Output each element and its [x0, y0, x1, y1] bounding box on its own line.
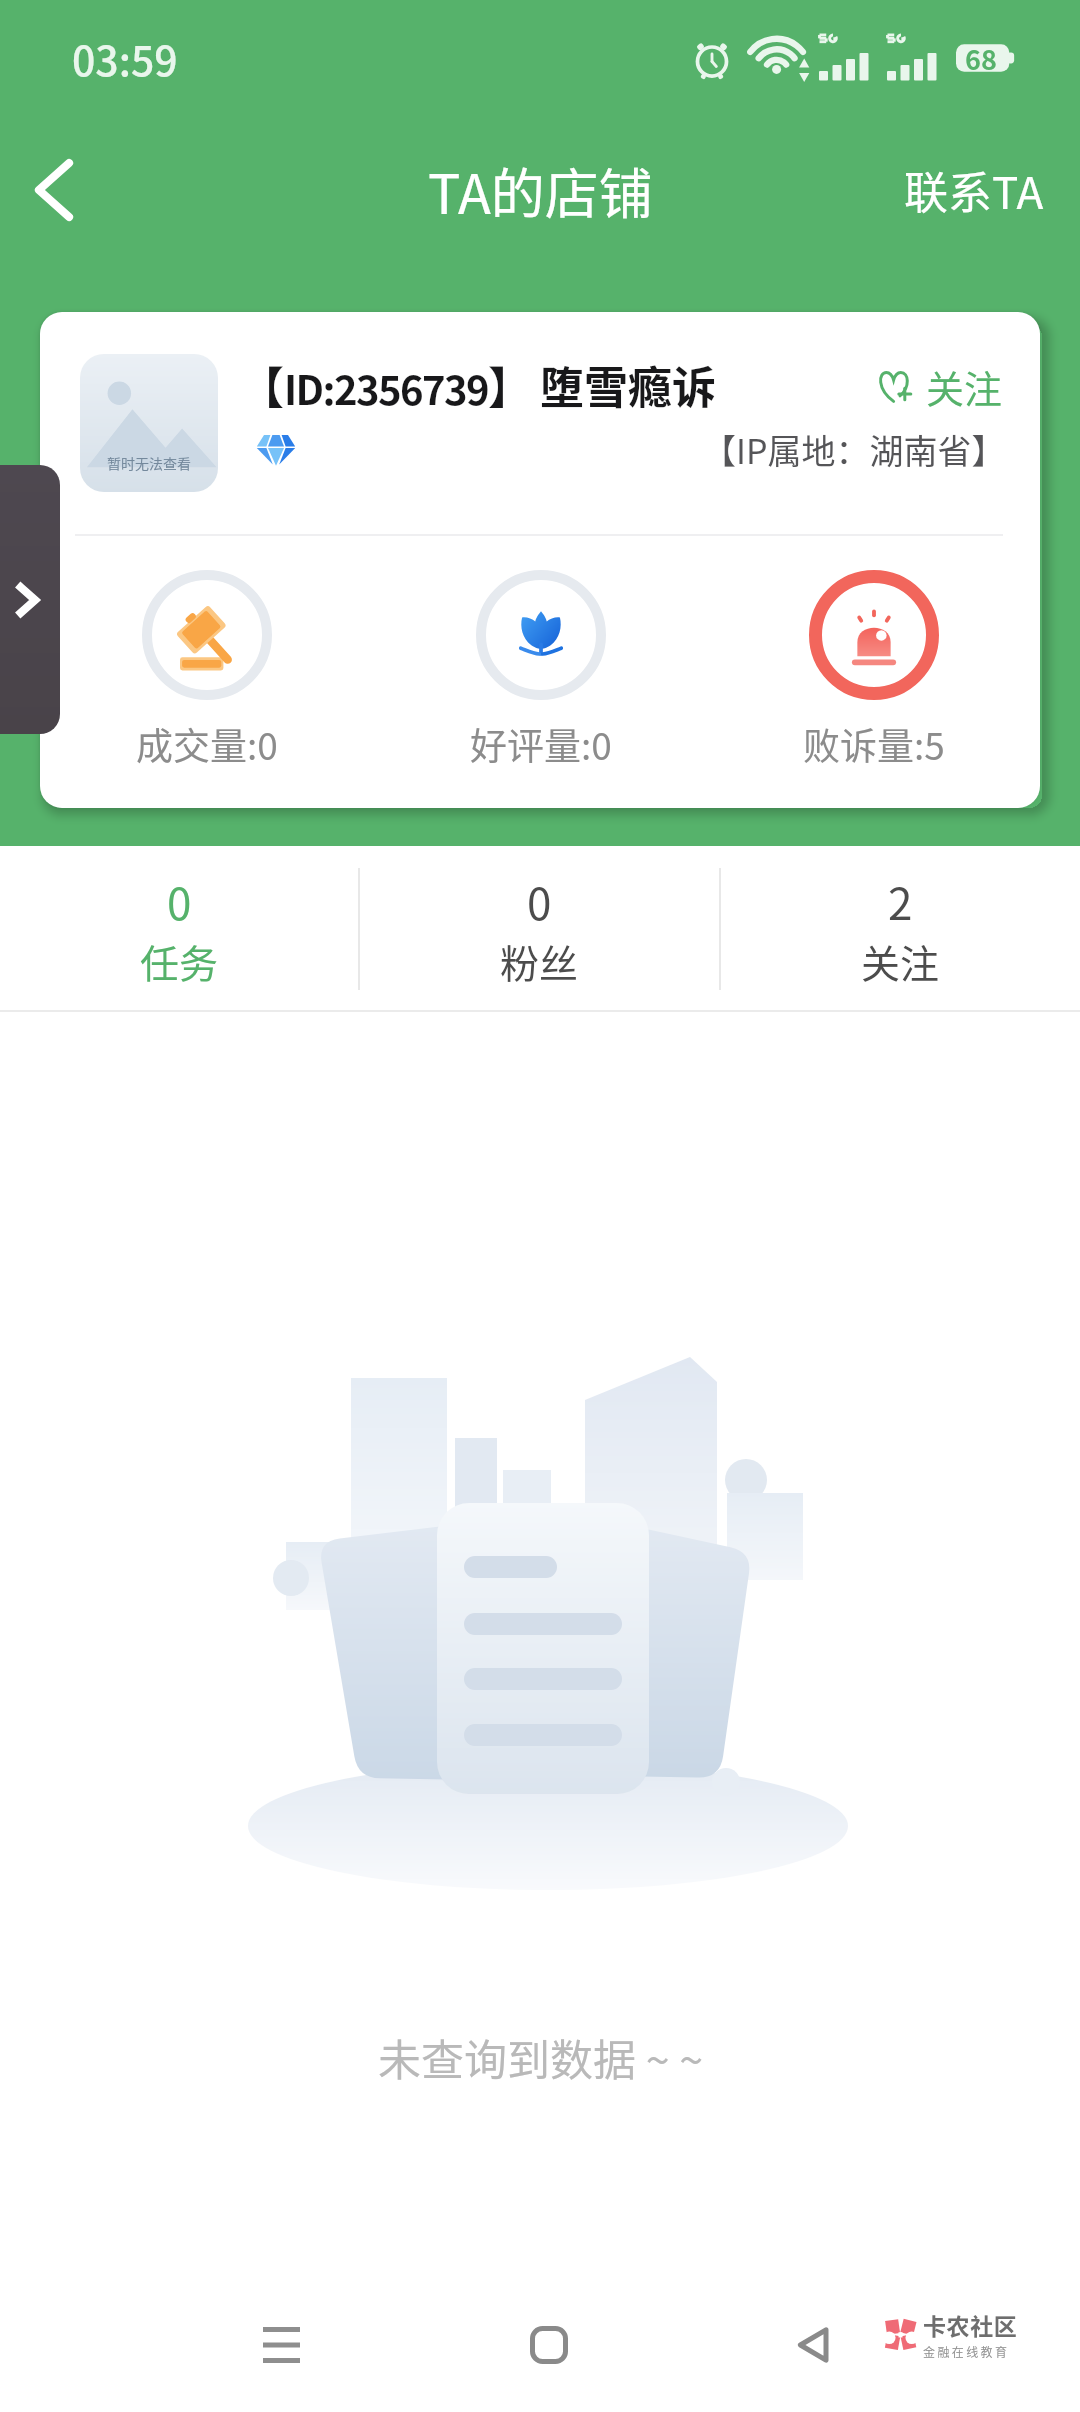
staticText: TA的店铺 [428, 151, 653, 229]
staticText: 未查询到数据 ~ ~ [378, 2026, 703, 2088]
button[interactable]: 败诉量:5 [707, 570, 1040, 771]
staticText: 暂时无法查看 [107, 453, 191, 473]
button[interactable]: Avatar [80, 354, 218, 492]
staticText: 0 [167, 869, 192, 933]
staticText: 关注 [861, 933, 940, 989]
button[interactable]: 0 [0, 846, 358, 1012]
staticText: 2 [888, 869, 913, 933]
staticText: ID:2356739 [284, 359, 488, 417]
staticText: 任务 [140, 933, 219, 989]
button[interactable]: 成交量:0 [40, 570, 374, 771]
staticText: 03:59 [72, 28, 178, 87]
staticText: 】 [488, 353, 532, 417]
button[interactable]: Recent apps [245, 2309, 317, 2381]
staticText: 粉丝 [500, 933, 579, 989]
staticText: 败诉量:5 [803, 717, 945, 771]
staticText: 【IP属地：湖南省】 [702, 425, 1006, 474]
button[interactable]: 好评量:0 [374, 570, 707, 771]
button[interactable]: Back [778, 2309, 850, 2381]
button[interactable]: Back [8, 144, 100, 236]
staticText: 卡农社区 [923, 2308, 1018, 2341]
button[interactable]: 0 [360, 846, 719, 1012]
staticText: 关注 [926, 359, 1003, 414]
staticText: 金融在线教育 [923, 2343, 1010, 2360]
button[interactable]: 关注 [864, 347, 1015, 426]
staticText: 0 [527, 869, 552, 933]
staticText: 联系TA [904, 158, 1044, 222]
button[interactable]: 联系TA [868, 140, 1080, 240]
staticText: 【 [240, 353, 284, 417]
button[interactable]: 2 [721, 846, 1080, 1012]
staticText: 成交量:0 [136, 717, 278, 771]
button[interactable]: Home [513, 2309, 585, 2381]
staticText: 68 [965, 39, 997, 78]
staticText: 好评量:0 [470, 717, 612, 771]
staticText: 堕雪瘾诉 [540, 353, 716, 417]
button[interactable]: Expand side panel [0, 465, 60, 734]
